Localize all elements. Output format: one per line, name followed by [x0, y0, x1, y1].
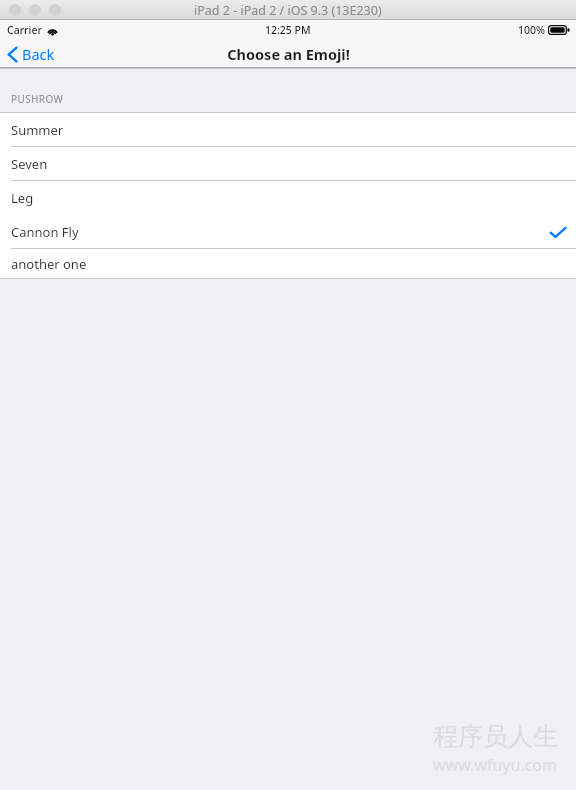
staticText: another one	[11, 255, 87, 273]
staticText: 程序员人生	[433, 721, 558, 752]
button[interactable]: Window button	[9, 4, 21, 16]
staticText: Back	[22, 44, 55, 64]
button[interactable]: Summer	[0, 113, 576, 147]
button[interactable]: Seven	[0, 147, 576, 181]
button[interactable]: Window button	[29, 4, 41, 16]
button[interactable]: Leg	[0, 181, 576, 215]
other: Selected	[550, 227, 566, 238]
staticText: 12:25 PM	[265, 23, 311, 37]
button[interactable]: Back	[0, 40, 65, 68]
staticText: www.wfuyu.com	[433, 754, 558, 776]
staticText: Leg	[11, 189, 34, 207]
staticText: iPad 2 - iPad 2 / iOS 9.3 (13E230)	[194, 2, 382, 19]
button[interactable]: Cannon Fly	[0, 215, 576, 249]
staticText: PUSHROW	[11, 92, 64, 106]
staticText: Choose an Emoji!	[227, 44, 350, 64]
button[interactable]: another one	[0, 249, 576, 278]
staticText: Carrier	[7, 23, 42, 37]
staticText: 100%	[518, 23, 545, 37]
staticText: Summer	[11, 121, 64, 139]
button[interactable]: Window button	[49, 4, 61, 16]
staticText: Seven	[11, 155, 48, 173]
staticText: Cannon Fly	[11, 223, 79, 241]
